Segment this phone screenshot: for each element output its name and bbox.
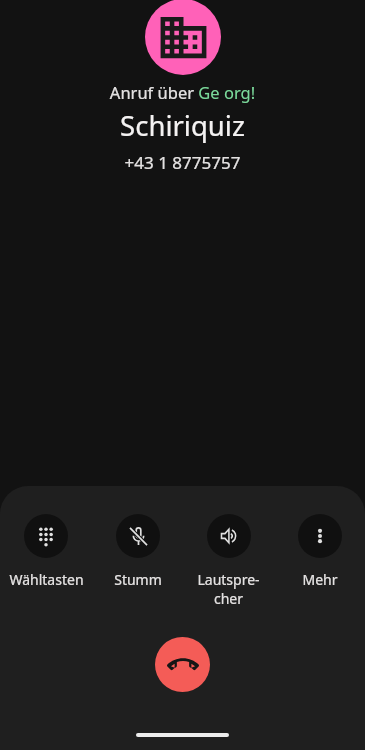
staticText: Stumm [114,570,162,589]
staticText: Schiriquiz [0,107,365,144]
staticText: +43 1 8775757 [0,151,365,174]
staticText: Anruf über Ge org! [0,81,365,103]
staticText: Lautspre- cher [197,570,260,608]
staticText: Wähltasten [9,570,84,589]
button[interactable]: Anruf beenden [155,637,210,692]
staticText: Mehr [302,570,338,589]
button[interactable]: Mehr [274,514,365,589]
button[interactable]: Wähltasten [0,514,92,589]
button[interactable]: Stumm [92,514,183,589]
button[interactable]: Lautspre- cher [183,514,274,608]
